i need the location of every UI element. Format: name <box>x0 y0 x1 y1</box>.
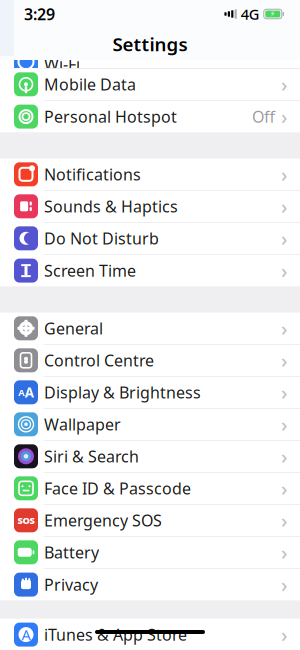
button[interactable]: Sounds & Haptics <box>0 191 300 223</box>
staticText: A <box>25 383 34 401</box>
staticText: › <box>281 411 288 438</box>
staticText: A <box>21 625 30 644</box>
button[interactable]: Battery <box>0 537 300 569</box>
button[interactable]: Personal Hotspot <box>0 101 300 133</box>
staticText: Personal Hotspot <box>44 106 177 127</box>
button[interactable]: Control Centre <box>0 345 300 377</box>
staticText: › <box>281 103 288 130</box>
staticText: › <box>281 539 288 566</box>
staticText: Settings <box>112 32 187 56</box>
staticText: › <box>281 379 288 406</box>
staticText: › <box>281 507 288 534</box>
button[interactable]: General <box>0 313 300 345</box>
staticText: › <box>281 257 288 284</box>
staticText: › <box>281 475 288 502</box>
staticText: Battery <box>44 542 99 563</box>
staticText: Wi-Fi <box>44 53 80 75</box>
button[interactable]: Screen Time <box>0 255 300 287</box>
staticText: Emergency SOS <box>44 510 162 531</box>
staticText: Display & Brightness <box>44 382 201 403</box>
staticText: › <box>281 347 288 374</box>
staticText: Off <box>252 106 275 127</box>
staticText: Do Not Disturb <box>44 228 159 249</box>
staticText: ⚡︎ <box>270 9 276 19</box>
staticText: Privacy <box>44 574 98 595</box>
staticText: › <box>281 225 288 252</box>
staticText: Screen Time <box>44 260 136 281</box>
staticText: › <box>281 71 288 98</box>
staticText: Notifications <box>44 164 141 185</box>
staticText: › <box>281 315 288 342</box>
button[interactable]: SOS <box>0 505 300 537</box>
staticText: 4G <box>241 4 260 24</box>
staticText: General <box>44 318 103 339</box>
staticText: Wallpaper <box>44 414 121 435</box>
button[interactable]: A <box>0 377 300 409</box>
staticText: › <box>281 193 288 220</box>
staticText: Face ID & Passcode <box>44 478 191 499</box>
button[interactable]: Do Not Disturb <box>0 223 300 255</box>
button[interactable]: Wallpaper <box>0 409 300 441</box>
button[interactable]: Face ID & Passcode <box>0 473 300 505</box>
button[interactable]: Mobile Data <box>0 69 300 101</box>
staticText: 3:29 <box>24 3 55 25</box>
staticText: › <box>281 621 288 648</box>
button[interactable]: Privacy <box>0 569 300 601</box>
staticText: iTunes & App Store <box>44 624 187 645</box>
staticText: Siri & Search <box>44 446 139 467</box>
button[interactable]: A <box>0 619 300 650</box>
staticText: Mobile Data <box>44 74 136 95</box>
button[interactable]: Siri & Search <box>0 441 300 473</box>
staticText: › <box>281 443 288 470</box>
staticText: A <box>18 386 24 398</box>
staticText: Sounds & Haptics <box>44 196 178 217</box>
staticText: Control Centre <box>44 350 154 371</box>
staticText: › <box>281 161 288 188</box>
staticText: › <box>281 571 288 598</box>
staticText: SOS <box>17 514 34 526</box>
button[interactable]: Notifications <box>0 159 300 191</box>
